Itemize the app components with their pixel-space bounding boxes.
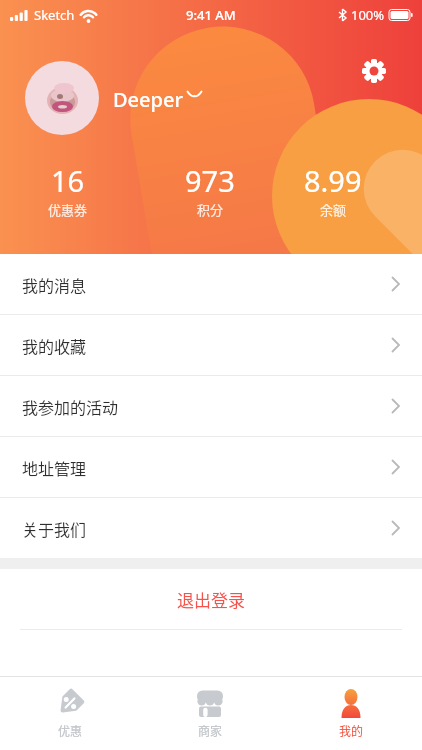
staticText: 地址管理	[22, 456, 87, 479]
staticText: 余额	[320, 200, 347, 219]
button[interactable]	[25, 61, 99, 135]
staticText: 我的消息	[22, 273, 87, 296]
staticText: 退出登录	[177, 587, 245, 612]
staticText: 9:41 AM	[186, 6, 236, 24]
button[interactable]: Deeper	[113, 86, 183, 113]
staticText: 16	[51, 161, 85, 200]
staticText: 973	[185, 161, 235, 200]
staticText: 我的收藏	[22, 334, 87, 357]
button[interactable]: 我的	[281, 677, 422, 750]
button[interactable]: 地址管理	[0, 437, 422, 497]
staticText: Sketch	[34, 6, 75, 24]
button[interactable]	[360, 57, 388, 85]
staticText: 我的	[339, 722, 364, 739]
staticText: 优惠券	[48, 200, 88, 219]
button[interactable]: 退出登录	[0, 569, 422, 629]
button[interactable]: 我参加的活动	[0, 376, 422, 436]
staticText: 关于我们	[22, 517, 87, 540]
staticText: 我参加的活动	[22, 395, 119, 418]
button[interactable]: 我的收藏	[0, 315, 422, 375]
button[interactable]: 关于我们	[0, 498, 422, 558]
button[interactable]: 我的消息	[0, 254, 422, 314]
staticText: 商家	[198, 722, 223, 739]
button[interactable]: 优惠	[0, 677, 140, 750]
staticText: 优惠	[58, 722, 83, 739]
button[interactable]: 商家	[140, 677, 281, 750]
staticText: 8.99	[304, 161, 362, 200]
staticText: 100%	[351, 6, 385, 24]
staticText: 积分	[197, 200, 224, 219]
staticText: Deeper	[113, 86, 183, 113]
